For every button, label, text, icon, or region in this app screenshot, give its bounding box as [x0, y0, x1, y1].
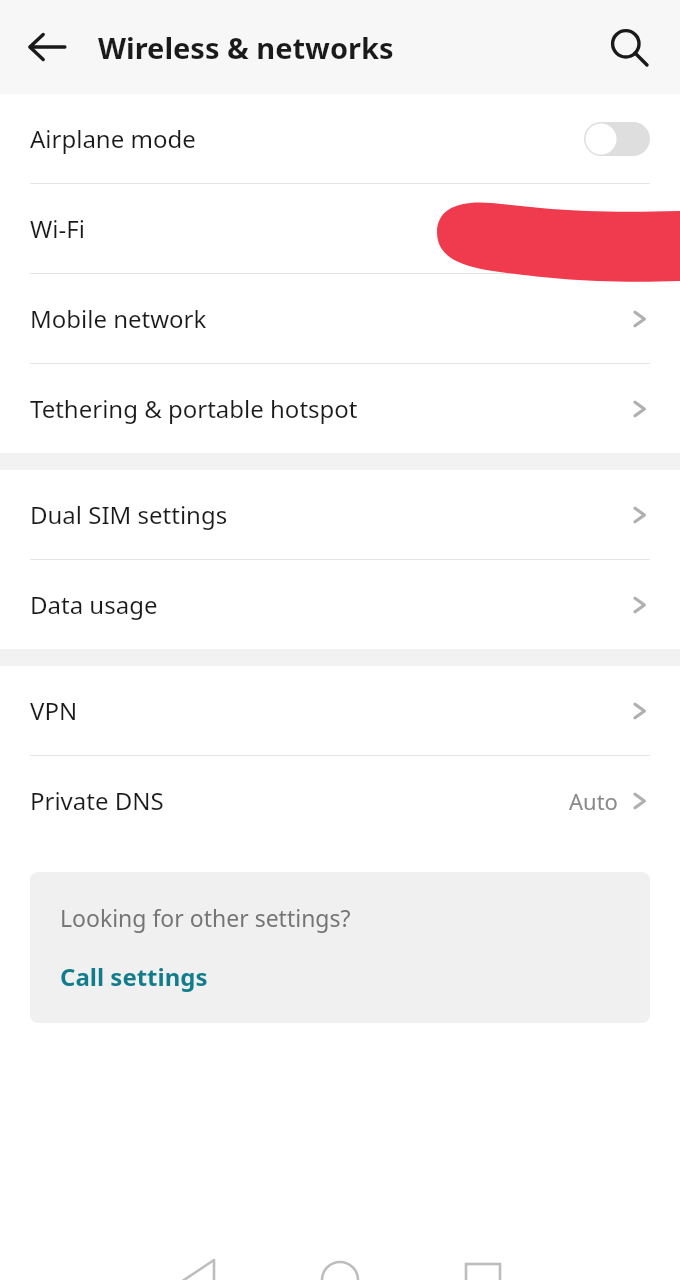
- button[interactable]: Private DNS: [0, 756, 680, 845]
- button[interactable]: Looking for other settings?: [30, 872, 650, 1023]
- button[interactable]: Airplane mode toggle: [584, 122, 650, 156]
- staticText: VPN: [30, 694, 78, 727]
- button[interactable]: Tethering & portable hotspot: [0, 364, 680, 453]
- staticText: Call settings: [60, 960, 208, 993]
- button[interactable]: Airplane mode: [0, 94, 680, 183]
- button[interactable]: Dual SIM settings: [0, 470, 680, 559]
- staticText: Private DNS: [30, 784, 164, 817]
- staticText: Wi-Fi: [30, 212, 85, 245]
- staticText: Data usage: [30, 588, 158, 621]
- button[interactable]: Mobile network: [0, 274, 680, 363]
- staticText: Tethering & portable hotspot: [30, 392, 358, 425]
- button[interactable]: Back: [18, 18, 76, 76]
- staticText: Airplane mode: [30, 122, 196, 155]
- staticText: Dual SIM settings: [30, 498, 228, 531]
- button[interactable]: Wi-Fi: [0, 184, 680, 273]
- staticText: Auto: [569, 786, 618, 816]
- button[interactable]: Search: [600, 18, 658, 76]
- button[interactable]: Data usage: [0, 560, 680, 649]
- staticText: Mobile network: [30, 302, 207, 335]
- staticText: Wireless & networks: [98, 28, 394, 67]
- staticText: Looking for other settings?: [60, 902, 351, 933]
- button[interactable]: VPN: [0, 666, 680, 755]
